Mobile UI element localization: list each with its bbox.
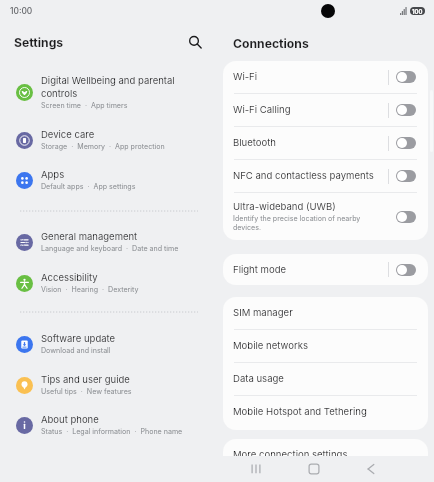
button[interactable]: Wi-Fi Calling xyxy=(223,94,428,126)
button[interactable]: NFC and contactless payments xyxy=(223,160,428,192)
button[interactable]: Tips and user guide xyxy=(0,368,218,402)
button[interactable]: Search xyxy=(183,30,207,54)
button[interactable]: General management xyxy=(0,225,218,259)
staticText: Wi-Fi Calling xyxy=(233,104,291,116)
staticText: Language and keyboard · Date and time xyxy=(41,244,179,253)
button[interactable]: Toggle xyxy=(396,104,416,116)
button[interactable]: Mobile Hotspot and Tethering xyxy=(223,396,428,428)
button[interactable]: Device care xyxy=(0,123,218,157)
button[interactable]: Mobile networks xyxy=(223,330,428,362)
staticText: NFC and contactless payments xyxy=(233,170,374,182)
staticText: Vision · Hearing · Dexterity xyxy=(41,285,139,294)
staticText: Ultra-wideband (UWB) xyxy=(233,201,336,213)
staticText: 100 xyxy=(412,8,423,15)
staticText: Accessibility xyxy=(41,272,98,283)
button[interactable]: Back xyxy=(358,456,384,482)
staticText: Screen time · App timers xyxy=(41,101,128,110)
button[interactable]: Home xyxy=(301,456,327,482)
button[interactable]: Recent apps xyxy=(243,456,269,482)
button[interactable]: Toggle xyxy=(396,71,416,83)
staticText: Data usage xyxy=(233,373,284,385)
button[interactable]: Data usage xyxy=(223,363,428,395)
button[interactable]: Ultra-wideband (UWB) xyxy=(223,193,428,240)
button[interactable]: Toggle xyxy=(396,170,416,182)
button[interactable]: Software update xyxy=(0,327,218,361)
staticText: Digital Wellbeing and parental controls xyxy=(41,75,175,99)
staticText: Status · Legal information · Phone name xyxy=(41,427,183,436)
staticText: More connection settings xyxy=(233,449,348,461)
button[interactable]: Bluetooth xyxy=(223,127,428,159)
staticText: Flight mode xyxy=(233,264,287,276)
staticText: Mobile Hotspot and Tethering xyxy=(233,406,367,418)
button[interactable]: Apps xyxy=(0,163,218,197)
staticText: About phone xyxy=(41,414,99,425)
button[interactable]: Toggle xyxy=(396,264,416,276)
staticText: Device care xyxy=(41,129,95,140)
staticText: SIM manager xyxy=(233,307,293,319)
staticText: Default apps · App settings xyxy=(41,182,136,191)
staticText: Connections xyxy=(233,36,309,51)
button[interactable]: Wi-Fi xyxy=(223,61,428,93)
staticText: Useful tips · New features xyxy=(41,387,132,396)
button[interactable]: Digital Wellbeing and parental controls xyxy=(0,71,218,113)
button[interactable]: Flight mode xyxy=(223,254,428,285)
staticText: Settings xyxy=(14,35,64,50)
staticText: Tips and user guide xyxy=(41,374,130,385)
staticText: Identify the precise location of nearby … xyxy=(233,214,361,232)
button[interactable]: SIM manager xyxy=(223,297,428,329)
button[interactable]: Toggle xyxy=(396,137,416,149)
staticText: Software update xyxy=(41,333,116,344)
button[interactable]: More connection settings xyxy=(223,439,428,471)
button[interactable]: Accessibility xyxy=(0,266,218,300)
button[interactable]: Toggle xyxy=(396,211,416,223)
staticText: Bluetooth xyxy=(233,137,277,149)
staticText: 10:00 xyxy=(10,6,33,16)
staticText: Storage · Memory · App protection xyxy=(41,142,165,151)
staticText: Download and install xyxy=(41,346,111,355)
staticText: Apps xyxy=(41,169,65,180)
staticText: General management xyxy=(41,231,138,242)
staticText: Mobile networks xyxy=(233,340,308,352)
staticText: Wi-Fi xyxy=(233,71,258,83)
button[interactable]: About phone xyxy=(0,408,218,442)
